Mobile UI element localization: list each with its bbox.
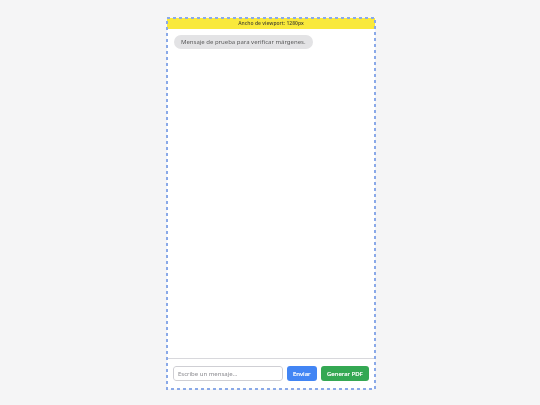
staticText: Ancho de viewport: 1280px xyxy=(238,20,304,27)
staticText: Enviar xyxy=(293,370,311,378)
staticText: Escribe un mensaje... xyxy=(178,370,238,378)
button[interactable]: Enviar xyxy=(287,366,317,381)
button[interactable]: Escribe un mensaje... xyxy=(173,366,283,381)
staticText: Generar PDF xyxy=(327,370,363,378)
staticText: Mensaje de prueba para verificar márgene… xyxy=(181,38,306,46)
button[interactable]: Generar PDF xyxy=(321,366,369,381)
button[interactable]: Mensaje de prueba para verificar márgene… xyxy=(174,35,313,49)
